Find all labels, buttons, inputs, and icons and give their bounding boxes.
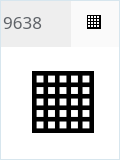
staticText: 9638	[3, 11, 42, 34]
button[interactable]: Show grid	[80, 8, 108, 36]
